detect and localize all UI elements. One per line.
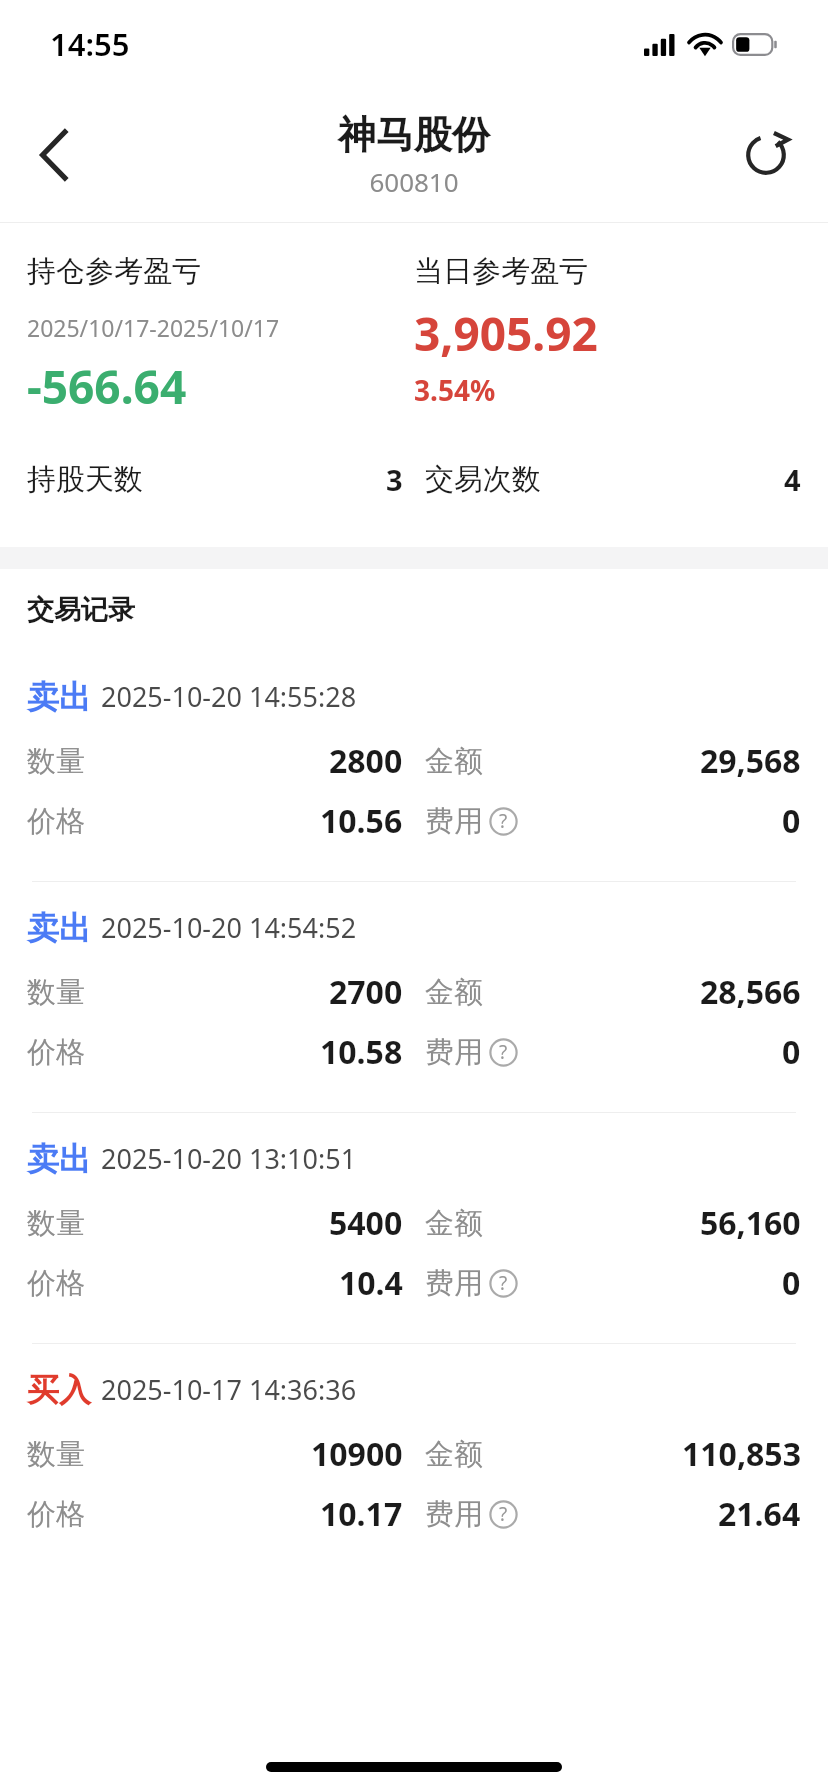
- staticText: 数量: [27, 743, 85, 780]
- staticText: 卖出: [27, 1139, 91, 1179]
- staticText: 2700: [329, 970, 403, 1014]
- staticText: 4: [784, 460, 801, 499]
- staticText: 神马股份: [338, 111, 490, 159]
- staticText: 28,566: [700, 970, 801, 1014]
- staticText: 交易记录: [27, 593, 135, 627]
- staticText: 价格: [27, 803, 85, 840]
- staticText: 金额: [425, 743, 483, 780]
- staticText: ?: [499, 1501, 508, 1527]
- staticText: 卖出: [27, 908, 91, 948]
- staticText: 价格: [27, 1265, 85, 1302]
- staticText: 3: [386, 460, 403, 499]
- staticText: 3.54%: [414, 371, 496, 409]
- staticText: 29,568: [700, 739, 801, 783]
- button[interactable]: 持股天数: [27, 460, 403, 499]
- button[interactable]: 卖出: [0, 882, 828, 1112]
- staticText: 数量: [27, 1436, 85, 1473]
- button[interactable]: 卖出: [0, 1113, 828, 1343]
- staticText: 金额: [425, 1205, 483, 1242]
- button[interactable]: Fee info: [487, 1036, 519, 1068]
- staticText: 费用: [425, 1496, 483, 1533]
- button[interactable]: Refresh: [720, 109, 812, 201]
- staticText: 金额: [425, 974, 483, 1011]
- staticText: 金额: [425, 1436, 483, 1473]
- staticText: 0: [782, 799, 801, 843]
- staticText: 数量: [27, 1205, 85, 1242]
- staticText: ?: [499, 1039, 508, 1065]
- staticText: ?: [499, 808, 508, 834]
- button[interactable]: 卖出: [0, 651, 828, 881]
- staticText: 当日参考盈亏: [414, 253, 588, 290]
- staticText: 2025-10-20 14:55:28: [101, 678, 357, 715]
- staticText: 10.4: [339, 1261, 403, 1305]
- staticText: 持股天数: [27, 461, 143, 498]
- staticText: 2025-10-20 13:10:51: [101, 1140, 357, 1177]
- staticText: 10.56: [320, 799, 403, 843]
- staticText: 交易次数: [425, 461, 541, 498]
- staticText: -566.64: [27, 355, 187, 418]
- staticText: 卖出: [27, 677, 91, 717]
- staticText: 600810: [369, 164, 459, 199]
- button[interactable]: Fee info: [487, 1498, 519, 1530]
- staticText: 费用: [425, 1034, 483, 1071]
- button[interactable]: 买入: [0, 1344, 828, 1574]
- staticText: 56,160: [700, 1201, 801, 1245]
- staticText: 0: [782, 1030, 801, 1074]
- staticText: 14:55: [50, 23, 130, 65]
- staticText: 3,905.92: [414, 302, 598, 365]
- staticText: 费用: [425, 803, 483, 840]
- staticText: 数量: [27, 974, 85, 1011]
- staticText: 价格: [27, 1496, 85, 1533]
- staticText: 费用: [425, 1265, 483, 1302]
- staticText: 5400: [329, 1201, 403, 1245]
- button[interactable]: Fee info: [487, 805, 519, 837]
- staticText: 价格: [27, 1034, 85, 1071]
- staticText: 10.17: [320, 1492, 403, 1536]
- staticText: 2025-10-17 14:36:36: [101, 1371, 357, 1408]
- staticText: 0: [782, 1261, 801, 1305]
- staticText: 110,853: [682, 1432, 801, 1476]
- staticText: 21.64: [718, 1492, 801, 1536]
- staticText: 10.58: [320, 1030, 403, 1074]
- staticText: 2025-10-20 14:54:52: [101, 909, 357, 946]
- staticText: 2025/10/17-2025/10/17: [27, 312, 280, 343]
- button[interactable]: Back: [8, 109, 100, 201]
- staticText: 10900: [311, 1432, 403, 1476]
- staticText: 持仓参考盈亏: [27, 253, 201, 290]
- button[interactable]: 交易次数: [425, 460, 801, 499]
- staticText: ?: [499, 1270, 508, 1296]
- staticText: 2800: [329, 739, 403, 783]
- button[interactable]: Fee info: [487, 1267, 519, 1299]
- staticText: 买入: [27, 1370, 91, 1410]
